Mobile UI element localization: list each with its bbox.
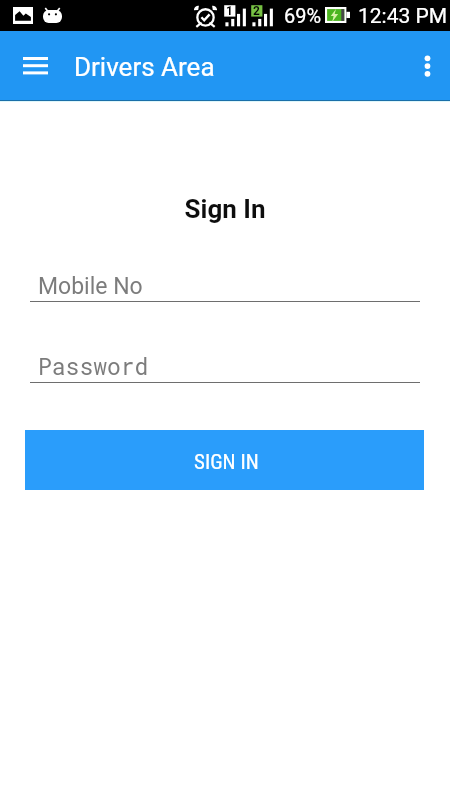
staticText: 69% (284, 4, 322, 27)
staticText: Mobile No (38, 273, 143, 300)
button[interactable]: Mobile No (30, 271, 420, 305)
button[interactable]: Password (30, 352, 420, 386)
button[interactable]: More options (404, 42, 450, 88)
button[interactable]: Open navigation drawer (11, 42, 59, 90)
staticText: 2 (253, 4, 260, 18)
staticText: Password (38, 351, 149, 381)
staticText: SIGN IN (194, 450, 259, 475)
button[interactable]: SIGN IN (25, 430, 424, 490)
staticText: 12:43 PM (358, 4, 448, 29)
staticText: Drivers Area (74, 52, 215, 82)
staticText: Sign In (0, 194, 450, 224)
staticText: 1 (226, 4, 233, 18)
